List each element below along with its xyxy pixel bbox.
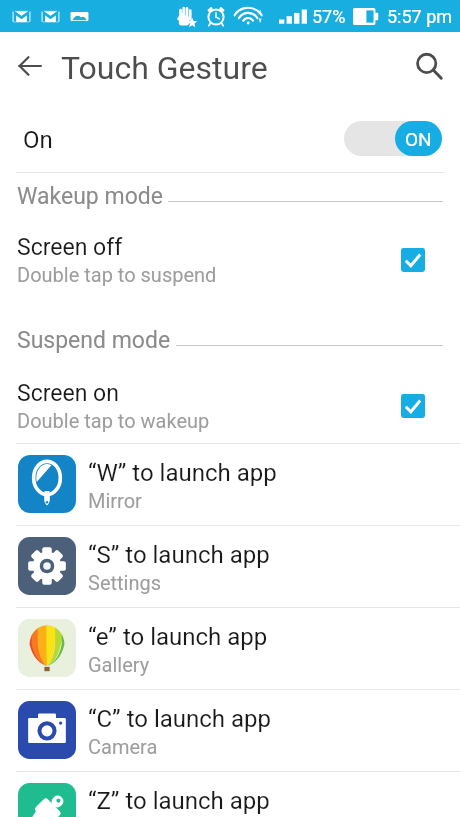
button[interactable]: Screen off xyxy=(0,231,460,289)
staticText: Suspend mode xyxy=(17,327,171,354)
staticText: 5:57 pm xyxy=(387,6,453,27)
button[interactable]: “S” to launch app xyxy=(0,525,460,607)
staticText: Double tap to wakeup xyxy=(17,409,210,432)
button[interactable]: “C” to launch app xyxy=(0,689,460,771)
staticText: “e” to launch app xyxy=(88,623,268,651)
button[interactable]: “Z” to launch app xyxy=(0,771,460,817)
staticText: Mirror xyxy=(88,489,142,512)
staticText: Touch Gesture xyxy=(61,49,268,87)
staticText: “S” to launch app xyxy=(88,541,270,569)
staticText: Wakeup mode xyxy=(17,183,163,210)
staticText: Screen off xyxy=(17,234,123,261)
button[interactable]: On xyxy=(0,100,460,172)
button[interactable]: Screen on xyxy=(0,377,460,435)
button[interactable]: “W” to launch app xyxy=(0,443,460,525)
staticText: Camera xyxy=(88,735,158,758)
staticText: On xyxy=(23,126,53,154)
staticText: “Z” to launch app xyxy=(88,787,270,815)
staticText: “W” to launch app xyxy=(88,459,277,487)
button[interactable]: Search xyxy=(405,42,453,90)
staticText: “C” to launch app xyxy=(88,705,272,733)
staticText: Settings xyxy=(88,571,162,594)
staticText: Screen on xyxy=(17,380,119,407)
button[interactable]: “e” to launch app xyxy=(0,607,460,689)
staticText: 57% xyxy=(312,6,346,27)
staticText: Gallery xyxy=(88,653,150,676)
staticText: ON xyxy=(405,128,432,150)
button[interactable]: Back xyxy=(6,42,54,90)
staticText: Double tap to suspend xyxy=(17,263,217,286)
